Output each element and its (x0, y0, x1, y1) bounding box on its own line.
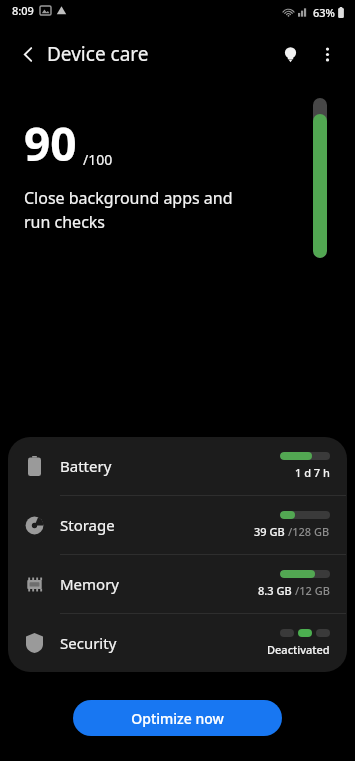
staticText: 8.3 GB (258, 583, 295, 598)
staticText: Memory (60, 574, 258, 594)
staticText: 1 d 7 h (295, 465, 330, 480)
staticText: /128 GB (288, 524, 330, 539)
button[interactable]: Tips (270, 34, 310, 74)
staticText: Battery (60, 456, 280, 476)
button[interactable]: Storage (8, 496, 347, 554)
staticText: Optimize now (131, 709, 224, 728)
staticText: Device care (47, 41, 149, 67)
staticText: Storage (60, 515, 254, 535)
staticText: 90 (24, 112, 77, 175)
staticText: /12 GB (295, 583, 330, 598)
button[interactable]: Back (8, 34, 48, 74)
button[interactable]: Battery (8, 437, 347, 495)
button[interactable]: Optimize now (73, 700, 282, 736)
button[interactable]: More options (307, 34, 347, 74)
button[interactable]: Memory (8, 555, 347, 613)
staticText: Deactivated (267, 642, 330, 657)
staticText: 39 GB (254, 524, 288, 539)
staticText: /100 (83, 150, 113, 169)
button[interactable]: Security (8, 614, 347, 672)
staticText: Security (60, 633, 267, 653)
staticText: Close background apps and run checks (24, 187, 233, 233)
staticText: 63% (313, 5, 335, 20)
staticText: 8:09 (12, 3, 34, 18)
